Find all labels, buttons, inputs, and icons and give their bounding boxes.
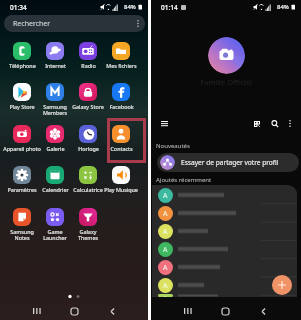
staticText: Samsung Members [39, 103, 71, 116]
button[interactable]: Menu [157, 116, 172, 131]
button[interactable]: Play Store [1, 83, 43, 110]
button[interactable]: Profile picture [208, 37, 245, 74]
button[interactable]: A [152, 276, 297, 294]
button[interactable]: Rechercher [4, 15, 145, 32]
staticText: Internet [45, 62, 66, 69]
button[interactable]: Paramètres [1, 166, 43, 193]
staticText: Galaxy Store [72, 103, 104, 110]
button[interactable]: A [152, 258, 297, 276]
staticText: Téléphone [9, 62, 36, 69]
button[interactable]: Scan QR code [250, 117, 264, 131]
staticText: Essayer de partager votre profil [181, 158, 279, 167]
staticText: Horloge [78, 145, 99, 152]
staticText: A [163, 227, 168, 237]
button[interactable]: Internet [34, 42, 76, 69]
staticText: 84% [124, 3, 136, 11]
button[interactable]: Mes fichiers [100, 42, 142, 69]
staticText: Mes fichiers [106, 62, 137, 69]
staticText: A [163, 294, 168, 297]
staticText: A [163, 281, 168, 291]
staticText: Nouveautés [156, 142, 190, 150]
staticText: A [163, 191, 168, 201]
button[interactable]: Calendrier [34, 166, 76, 193]
button[interactable]: Galerie [34, 125, 76, 152]
button[interactable]: Samsung Members [39, 83, 71, 116]
button[interactable]: Recent apps [27, 301, 47, 320]
button[interactable]: A [152, 294, 297, 297]
staticText: Contacts [110, 145, 133, 152]
button[interactable]: Home [215, 301, 235, 320]
button[interactable]: A [152, 222, 297, 240]
button[interactable]: Recent apps [178, 301, 198, 320]
staticText: Paramètres [7, 186, 37, 193]
button[interactable]: Back [253, 301, 273, 320]
staticText: Rechercher [13, 19, 51, 29]
staticText: 01:34 [10, 3, 27, 12]
button[interactable]: Add contact [272, 275, 292, 295]
staticText: Play Store [9, 103, 35, 110]
staticText: Samsung Notes [6, 228, 38, 241]
button[interactable]: More options [284, 118, 295, 129]
button[interactable]: Appareil photo [1, 125, 43, 152]
button[interactable]: Home [64, 301, 84, 320]
button[interactable]: Téléphone [1, 42, 43, 69]
staticText: A [163, 209, 168, 219]
staticText: Famille Officiel [151, 77, 301, 87]
staticText: Facebook [109, 103, 134, 110]
button[interactable]: Samsung Notes [6, 208, 38, 241]
staticText: A [163, 245, 168, 255]
staticText: Galaxy Themes [72, 228, 104, 241]
button[interactable]: Calculatrice [67, 166, 109, 193]
button[interactable]: Essayer de partager votre profil [157, 153, 299, 172]
button[interactable]: Horloge [67, 125, 109, 152]
button[interactable]: A [152, 204, 297, 222]
staticText: Play Musique [104, 186, 138, 193]
button[interactable]: Galaxy Themes [72, 208, 104, 241]
button[interactable]: Back [102, 301, 122, 320]
button[interactable]: A [152, 240, 297, 258]
button[interactable]: Contacts [100, 125, 142, 152]
button[interactable]: A [152, 186, 297, 204]
staticText: 01:14 [161, 3, 178, 12]
button[interactable]: Galaxy Store [67, 83, 109, 110]
staticText: Appareil photo [3, 145, 41, 152]
button[interactable]: Radio [67, 42, 109, 69]
button[interactable]: Facebook [100, 83, 142, 110]
button[interactable]: Play Musique [100, 166, 142, 193]
staticText: Galerie [46, 145, 65, 152]
staticText: A [163, 263, 168, 273]
staticText: Ajoutés récemment [156, 176, 212, 184]
button[interactable]: Search [268, 117, 282, 131]
staticText: Calculatrice [73, 186, 103, 193]
button[interactable]: Game Launcher [39, 208, 71, 241]
staticText: 84% [277, 3, 289, 11]
staticText: Radio [81, 62, 96, 69]
staticText: Calendrier [42, 186, 69, 193]
staticText: Game Launcher [39, 228, 71, 241]
